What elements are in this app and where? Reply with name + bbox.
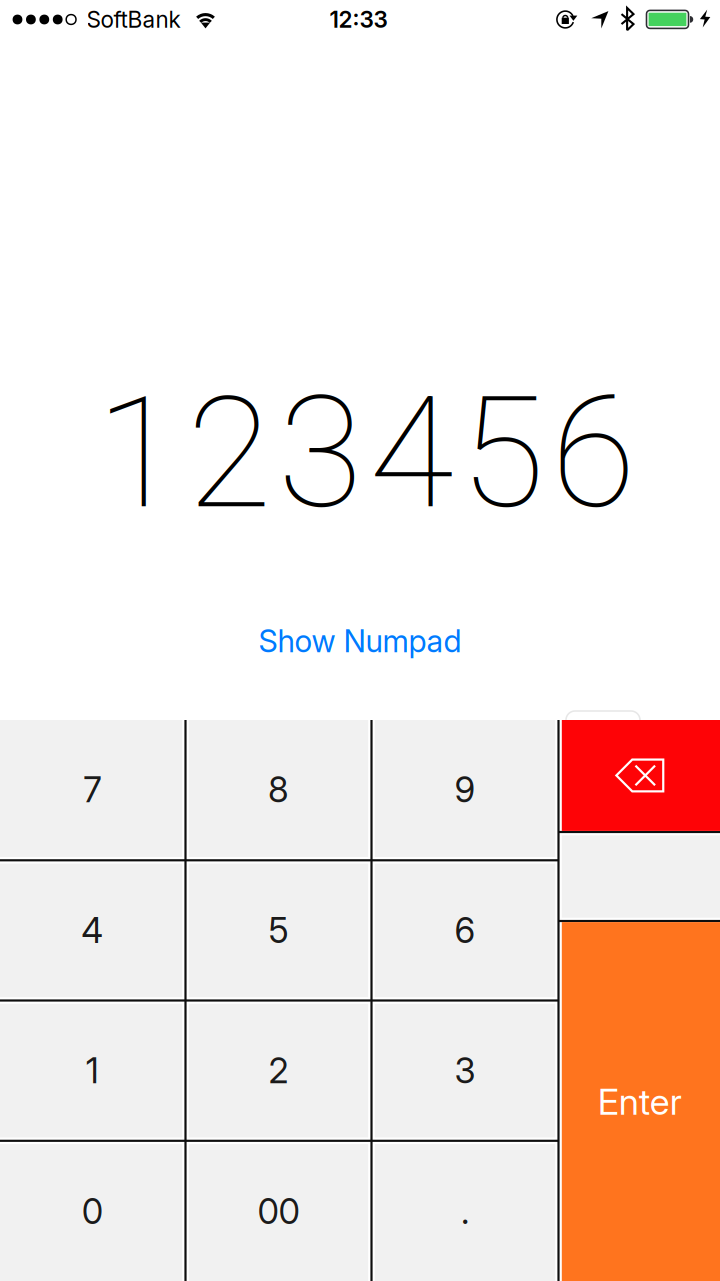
button[interactable]: 5 [187,861,370,999]
staticText: 8 [268,769,289,810]
button[interactable]: 9 [373,720,557,859]
staticText: Enter [598,1080,682,1123]
button[interactable]: 2 [187,1002,370,1140]
button[interactable]: 4 [0,861,184,999]
button[interactable]: 0 [0,1142,184,1281]
staticText: SoftBank [86,6,180,33]
staticText: 4 [81,909,103,951]
staticText: 0 [82,1190,103,1232]
button[interactable]: Show Numpad [210,613,510,669]
button[interactable]: 8 [187,720,370,859]
staticText: . [461,1190,469,1232]
staticText: 3 [454,1050,475,1092]
staticText: 1 [86,1050,99,1092]
staticText: Show Numpad [258,622,461,659]
staticText: 123456 [96,363,636,544]
button[interactable]: 6 [373,861,557,999]
staticText: 6 [454,909,475,951]
button[interactable]: 1 [0,1002,184,1140]
button[interactable]: . [373,1142,557,1281]
staticText: 7 [83,769,101,810]
button[interactable]: 00 [187,1142,370,1281]
button[interactable]: 7 [0,720,184,859]
staticText: 00 [257,1190,299,1232]
staticText: 12:33 [329,6,387,33]
staticText: 9 [454,769,475,810]
button[interactable]: Enter [560,922,720,1281]
staticText: 2 [268,1050,288,1092]
button[interactable]: 3 [373,1002,557,1140]
staticText: 5 [268,909,288,951]
button[interactable]: Delete [560,720,720,831]
